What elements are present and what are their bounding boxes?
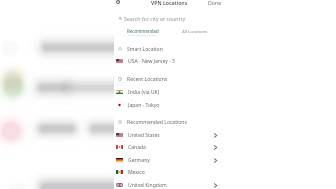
button[interactable]: USA - New Jersey - 3 bbox=[116, 55, 217, 67]
button[interactable]: All Locations bbox=[170, 28, 219, 37]
staticText: Recommended Locations bbox=[127, 119, 187, 126]
staticText: USA - New Jersey - 3 bbox=[128, 58, 175, 65]
staticText: Smart Location bbox=[127, 46, 163, 53]
button[interactable]: Search for city or country bbox=[119, 14, 229, 22]
staticText: All Locations bbox=[182, 28, 208, 34]
staticText: Search for city or country bbox=[124, 15, 186, 22]
button[interactable]: United Kingdom bbox=[116, 179, 217, 189]
button[interactable]: Mexico bbox=[116, 166, 217, 178]
button[interactable]: Germany bbox=[116, 154, 217, 166]
staticText: India (via UK) bbox=[128, 89, 160, 96]
button[interactable]: Japan - Tokyo bbox=[116, 99, 217, 111]
staticText: Canada bbox=[128, 144, 146, 151]
staticText: United Kingdom bbox=[128, 182, 167, 189]
button[interactable]: Recent history bbox=[116, 0, 120, 4]
button[interactable]: United States bbox=[116, 129, 217, 141]
button[interactable]: Canada bbox=[116, 141, 217, 153]
staticText: Recommended bbox=[127, 28, 159, 34]
staticText: Japan - Tokyo bbox=[128, 102, 160, 109]
staticText: VPN Locations bbox=[151, 0, 188, 6]
staticText: Recent Locations bbox=[127, 76, 168, 83]
button[interactable]: Done bbox=[208, 0, 222, 6]
staticText: United States bbox=[128, 132, 160, 139]
staticText: Mexico bbox=[128, 169, 145, 176]
staticText: Germany bbox=[128, 157, 150, 164]
button[interactable]: India (via UK) bbox=[116, 86, 217, 98]
button[interactable]: Recommended bbox=[116, 28, 169, 37]
